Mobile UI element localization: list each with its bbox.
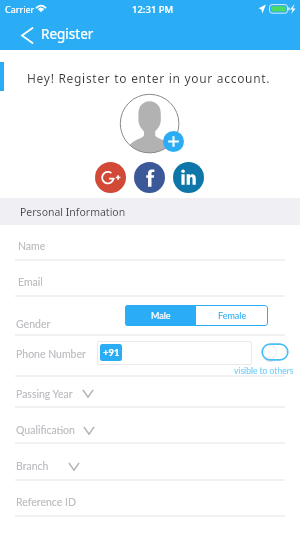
- staticText: Branch: [16, 460, 49, 473]
- staticText: 12:31 PM: [132, 3, 174, 16]
- staticText: Email: [18, 276, 43, 289]
- button[interactable]: Female: [196, 305, 268, 326]
- staticText: Gender: [16, 318, 51, 331]
- staticText: Register: [41, 25, 94, 43]
- other: Back: [21, 27, 34, 44]
- staticText: Phone Number: [16, 348, 86, 361]
- staticText: Personal Information: [20, 205, 126, 219]
- button[interactable]: Sign up with Google Plus: [95, 162, 126, 193]
- button[interactable]: Sign up with Facebook: [134, 162, 165, 193]
- button[interactable]: Back: [0, 26, 104, 44]
- button[interactable]: Expand: [83, 426, 95, 435]
- button[interactable]: Expand: [68, 462, 80, 471]
- staticText: Female: [218, 310, 247, 321]
- staticText: Passing Year: [16, 388, 73, 401]
- staticText: Name: [18, 240, 46, 253]
- button[interactable]: Expand: [82, 389, 94, 398]
- button[interactable]: +91: [97, 341, 252, 365]
- staticText: Qualification: [16, 424, 75, 437]
- button[interactable]: Visible to others: [259, 342, 290, 362]
- staticText: visible to others: [234, 366, 294, 376]
- staticText: Reference ID: [16, 496, 76, 509]
- button[interactable]: Add photo: [163, 131, 184, 152]
- staticText: +91: [103, 347, 120, 358]
- staticText: Hey! Register to enter in your account.: [27, 70, 271, 86]
- staticText: Male: [151, 310, 171, 321]
- button[interactable]: Male: [125, 305, 196, 326]
- staticText: Carrier: [5, 3, 35, 15]
- button[interactable]: Sign up with LinkedIn: [173, 162, 204, 193]
